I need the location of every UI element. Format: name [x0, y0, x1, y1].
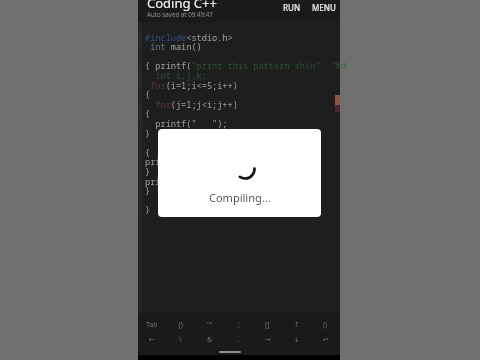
staticText: { printf("print this pattern sh\n" "%d": [145, 60, 347, 72]
staticText: 19: [139, 212, 146, 222]
staticText: for(i=1;i<=5;i++): [145, 80, 238, 92]
button[interactable]: Insert quotes: [195, 317, 224, 333]
staticText: 18: [139, 202, 146, 212]
button[interactable]: Move cursor down: [282, 332, 311, 348]
staticText: Tab: [146, 320, 158, 330]
staticText: {: [145, 89, 151, 101]
staticText: Auto saved at 09:49:47: [147, 10, 213, 18]
staticText: }: [145, 128, 151, 140]
button[interactable]: MENU: [308, 0, 340, 15]
staticText: 3: [139, 52, 143, 62]
button[interactable]: Insert backslash: [166, 332, 195, 348]
staticText: &: [207, 335, 213, 345]
staticText: }: [145, 166, 151, 178]
staticText: 13: [139, 152, 146, 162]
button[interactable]: Insert tab: [138, 317, 166, 333]
staticText: }: [145, 185, 151, 197]
staticText: 15: [139, 172, 146, 182]
staticText: .: [238, 335, 240, 345]
staticText: ↓: [294, 336, 300, 344]
staticText: pri: [145, 156, 161, 168]
staticText: #include<stdio.h>: [145, 32, 233, 44]
staticText: RUN: [283, 2, 301, 13]
staticText: int main(): [145, 41, 202, 53]
staticText: MENU: [312, 2, 336, 13]
staticText: for(j=1;j<i;j++): [145, 99, 238, 111]
staticText: {}: [178, 320, 184, 330]
staticText: \: [179, 335, 182, 345]
staticText: 10: [139, 122, 146, 132]
staticText: Coding C++: [147, 0, 217, 12]
staticText: ←: [149, 336, 155, 344]
staticText: 14: [139, 162, 146, 172]
staticText: 6: [139, 82, 143, 92]
staticText: []: [265, 320, 270, 330]
staticText: "": [207, 320, 213, 330]
staticText: ;: [238, 320, 240, 330]
button[interactable]: Insert ampersand: [195, 332, 224, 348]
staticText: 9: [139, 112, 143, 122]
staticText: {: [145, 147, 151, 159]
staticText: 7: [139, 92, 143, 102]
staticText: 11: [139, 132, 146, 142]
staticText: 4: [139, 62, 143, 72]
staticText: 12: [139, 142, 146, 152]
staticText: 1: [139, 32, 143, 42]
staticText: ↵: [323, 336, 329, 344]
staticText: 8: [139, 102, 143, 112]
staticText: {: [145, 108, 151, 120]
button[interactable]: Insert semicolon: [224, 317, 253, 333]
button[interactable]: Insert parentheses: [311, 317, 340, 333]
button[interactable]: Insert brackets: [253, 317, 282, 333]
staticText: 2: [139, 42, 143, 52]
button[interactable]: Move cursor up: [282, 317, 311, 333]
staticText: }: [145, 204, 151, 216]
staticText: Compiling...: [209, 190, 271, 205]
staticText: int i,j,k;: [145, 70, 207, 82]
button[interactable]: Move cursor right: [253, 332, 282, 348]
button[interactable]: Move cursor left: [138, 332, 166, 348]
staticText: ↑: [294, 321, 300, 329]
staticText: pri: [145, 176, 161, 188]
staticText: (): [323, 320, 328, 330]
staticText: 5: [139, 72, 143, 82]
staticText: printf(" ");: [145, 118, 228, 130]
button[interactable]: Insert new line: [311, 332, 340, 348]
button[interactable]: Insert braces: [166, 317, 195, 333]
staticText: 17: [139, 192, 146, 202]
button[interactable]: RUN: [279, 0, 305, 15]
staticText: →: [265, 336, 271, 344]
staticText: 16: [139, 182, 146, 192]
